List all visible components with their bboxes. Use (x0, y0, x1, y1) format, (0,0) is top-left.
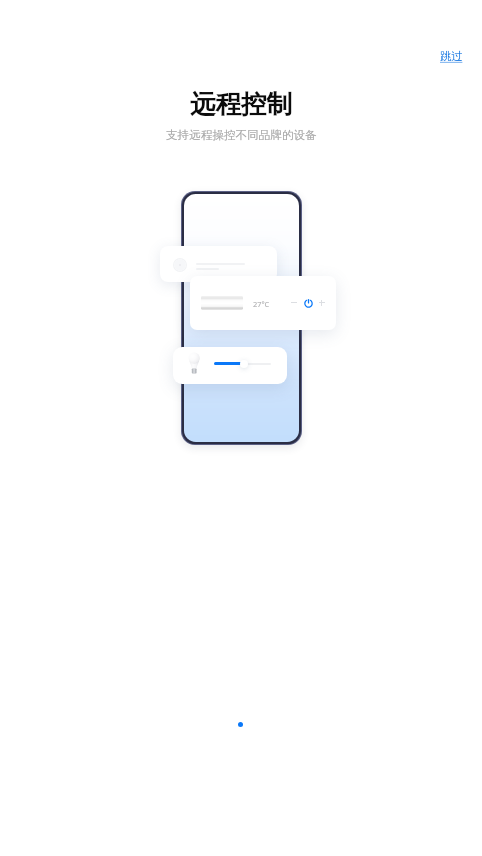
button[interactable]: 27°C (190, 276, 336, 330)
button[interactable]: 跳过 (437, 47, 466, 65)
other: Power (304, 299, 313, 308)
staticText: 27°C (253, 299, 270, 309)
button[interactable] (160, 246, 277, 282)
staticText: 跳过 (440, 49, 463, 63)
button[interactable] (173, 347, 287, 384)
staticText: 远程控制 (190, 88, 292, 120)
staticText: 支持远程操控不同品牌的设备 (166, 128, 317, 143)
